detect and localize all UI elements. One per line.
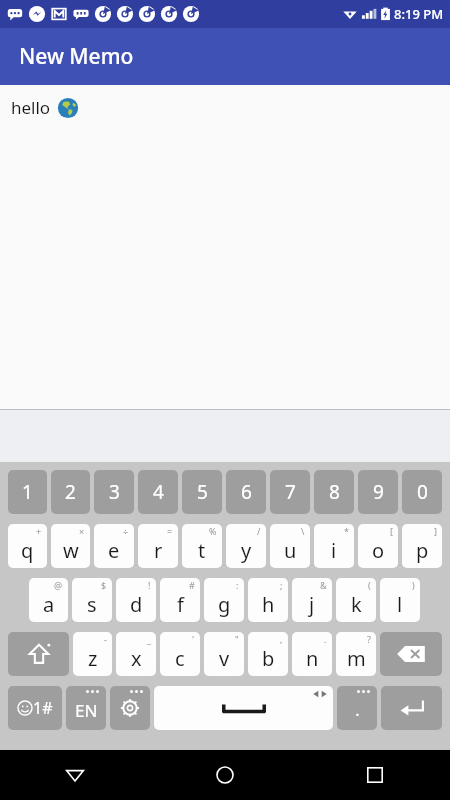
staticText: k bbox=[351, 591, 362, 618]
staticText: ÷ bbox=[123, 525, 129, 537]
button[interactable]: \ bbox=[270, 524, 310, 568]
button[interactable]: Backspace bbox=[380, 632, 442, 676]
button[interactable]: Settings bbox=[110, 686, 150, 730]
button[interactable]: + bbox=[8, 524, 47, 568]
staticText: ' bbox=[192, 633, 195, 645]
staticText: 0 bbox=[417, 479, 428, 505]
button[interactable]: * bbox=[314, 524, 354, 568]
staticText: # bbox=[189, 579, 195, 591]
button[interactable]: " bbox=[204, 632, 244, 676]
staticText: 1# bbox=[33, 697, 53, 719]
button[interactable]: ; bbox=[248, 578, 288, 622]
staticText: l bbox=[397, 591, 403, 618]
button[interactable]: 1# bbox=[8, 686, 62, 730]
staticText: ; bbox=[280, 579, 283, 591]
button[interactable]: Recents bbox=[300, 750, 450, 800]
staticText: b bbox=[262, 645, 275, 672]
staticText: p bbox=[416, 537, 429, 564]
staticText: . bbox=[324, 633, 327, 645]
button[interactable]: ] bbox=[402, 524, 442, 568]
staticText: " bbox=[235, 633, 239, 645]
button[interactable]: : bbox=[204, 578, 244, 622]
staticText: $ bbox=[101, 579, 107, 591]
staticText: ( bbox=[368, 579, 371, 591]
button[interactable]: ! bbox=[116, 578, 156, 622]
staticText: e bbox=[108, 537, 120, 564]
staticText: 3 bbox=[109, 479, 120, 505]
button[interactable]: [ bbox=[358, 524, 398, 568]
button[interactable]: New Memo bbox=[0, 28, 450, 85]
button[interactable]: % bbox=[182, 524, 222, 568]
staticText: 8 bbox=[329, 479, 340, 505]
staticText: / bbox=[257, 525, 261, 537]
button[interactable]: ? bbox=[336, 632, 376, 676]
staticText: hello bbox=[11, 96, 51, 119]
button[interactable]: 3 bbox=[94, 470, 134, 514]
staticText: ? bbox=[367, 633, 371, 645]
staticText: - bbox=[104, 633, 107, 645]
staticText: a bbox=[43, 591, 55, 618]
button[interactable]: & bbox=[292, 578, 332, 622]
staticText: & bbox=[320, 579, 327, 591]
button[interactable]: 0 bbox=[402, 470, 442, 514]
staticText: v bbox=[219, 645, 230, 672]
button[interactable]: Space bbox=[154, 686, 333, 730]
button[interactable]: ' bbox=[160, 632, 200, 676]
button[interactable]: , bbox=[248, 632, 288, 676]
staticText: g bbox=[218, 591, 231, 618]
button[interactable]: - bbox=[73, 632, 112, 676]
staticText: r bbox=[154, 537, 163, 564]
staticText: w bbox=[63, 537, 79, 564]
button[interactable]: 5 bbox=[182, 470, 222, 514]
staticText: : bbox=[236, 579, 239, 591]
button[interactable]: 7 bbox=[270, 470, 310, 514]
staticText: % bbox=[209, 525, 217, 537]
staticText: ! bbox=[148, 579, 151, 591]
staticText: n bbox=[306, 645, 319, 672]
staticText: 5 bbox=[197, 479, 208, 505]
button[interactable]: # bbox=[160, 578, 200, 622]
staticText: m bbox=[347, 645, 366, 672]
staticText: 7 bbox=[285, 479, 296, 505]
button[interactable]: 6 bbox=[226, 470, 266, 514]
button[interactable]: Back bbox=[0, 750, 150, 800]
button[interactable]: $ bbox=[72, 578, 112, 622]
staticText: + bbox=[36, 525, 42, 537]
staticText: \ bbox=[301, 525, 305, 537]
button[interactable]: Shift bbox=[8, 632, 69, 676]
button[interactable]: EN bbox=[66, 686, 106, 730]
button[interactable]: @ bbox=[29, 578, 68, 622]
button[interactable]: = bbox=[138, 524, 178, 568]
staticText: [ bbox=[390, 525, 393, 537]
button[interactable]: × bbox=[51, 524, 90, 568]
staticText: EN bbox=[75, 699, 98, 722]
staticText: ) bbox=[412, 579, 415, 591]
staticText: × bbox=[79, 525, 85, 537]
staticText: * bbox=[344, 525, 349, 537]
staticText: t bbox=[198, 537, 206, 564]
button[interactable]: 9 bbox=[358, 470, 398, 514]
button[interactable]: 8 bbox=[314, 470, 354, 514]
button[interactable]: . bbox=[292, 632, 332, 676]
button[interactable]: . bbox=[337, 686, 377, 730]
button[interactable]: / bbox=[226, 524, 266, 568]
staticText: d bbox=[130, 591, 143, 618]
button[interactable]: ÷ bbox=[94, 524, 134, 568]
staticText: = bbox=[167, 525, 173, 537]
button[interactable]: 4 bbox=[138, 470, 178, 514]
button[interactable]: 1 bbox=[8, 470, 47, 514]
button[interactable]: _ bbox=[116, 632, 156, 676]
staticText: 9 bbox=[373, 479, 384, 505]
button[interactable]: ( bbox=[336, 578, 376, 622]
button[interactable]: ) bbox=[380, 578, 420, 622]
staticText: . bbox=[355, 699, 360, 721]
button[interactable]: Home bbox=[150, 750, 300, 800]
button[interactable]: 2 bbox=[51, 470, 90, 514]
staticText: q bbox=[21, 537, 34, 564]
button[interactable]: hello bbox=[0, 85, 450, 410]
staticText: 6 bbox=[241, 479, 252, 505]
button[interactable]: Enter bbox=[381, 686, 442, 730]
staticText: @ bbox=[54, 579, 63, 591]
staticText: z bbox=[88, 645, 98, 672]
